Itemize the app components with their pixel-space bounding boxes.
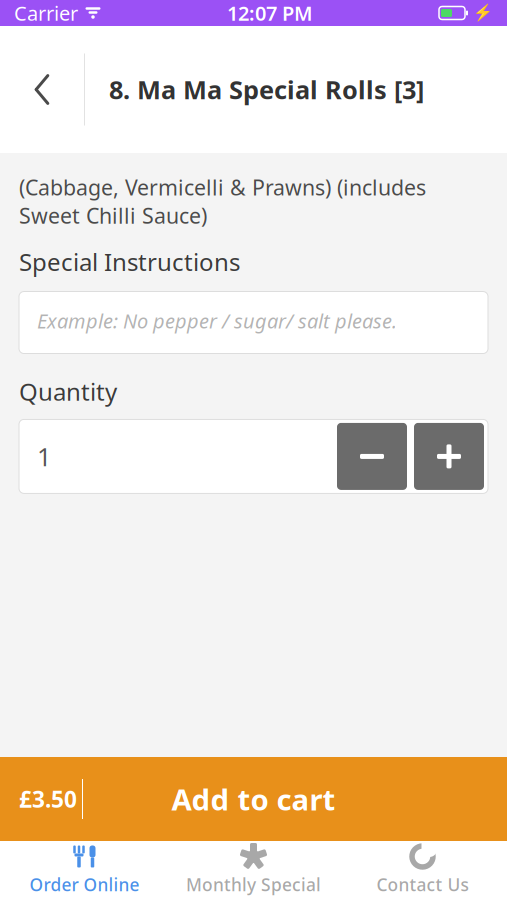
button[interactable]: Example: No pepper / sugar/ salt please. (19, 291, 488, 353)
button[interactable]: Back (0, 26, 84, 153)
staticText: Add to cart (171, 779, 335, 818)
staticText: Quantity (19, 375, 117, 407)
button[interactable]: £3.50 (0, 757, 507, 841)
button[interactable]: Monthly Special (169, 841, 338, 900)
staticText: 8. Ma Ma Special Rolls [3] (109, 73, 424, 106)
staticText: Order Online (29, 873, 139, 896)
button[interactable]: Decrease quantity (337, 423, 407, 490)
staticText: 12:07 PM (227, 0, 313, 26)
button[interactable]: Increase quantity (414, 423, 484, 490)
staticText: Monthly Special (186, 873, 321, 896)
staticText: 1 (37, 440, 51, 473)
staticText: £3.50 (19, 784, 77, 814)
staticText: ⚡ (473, 4, 493, 22)
staticText: Example: No pepper / sugar/ salt please. (37, 307, 397, 334)
button[interactable]: Contact Us (338, 841, 507, 900)
staticText: Special Instructions (19, 246, 240, 278)
staticText: (Cabbage, Vermicelli & Prawns) (includes… (19, 173, 426, 230)
staticText: Carrier (14, 0, 78, 26)
button[interactable]: Order Online (0, 841, 169, 900)
staticText: Contact Us (376, 873, 468, 896)
